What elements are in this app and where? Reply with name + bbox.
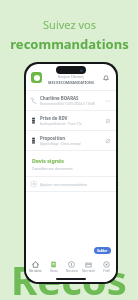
staticText: Suivez vos: [43, 17, 96, 32]
staticText: Ma cabine: [29, 269, 42, 273]
staticText: Appareillage · Devis envoyé: [40, 142, 81, 146]
staticText: Charlène BOARAS: [40, 95, 79, 101]
button[interactable]: Ma caisse: [63, 261, 80, 273]
staticText: Mon stock: [82, 269, 95, 273]
staticText: Bonjour Clément,: [58, 75, 85, 79]
staticText: MES RECOMMANDATIONS: [48, 80, 94, 85]
button[interactable]: Edit: [103, 136, 112, 145]
button[interactable]: Notifications: [100, 72, 111, 83]
button[interactable]: Charlène BOARAS: [26, 91, 116, 110]
staticText: Ajouter une recommandation: [40, 182, 88, 187]
staticText: Ma caisse: [66, 269, 78, 273]
staticText: Profil: [103, 269, 110, 273]
staticText: Devis signés: [32, 157, 64, 164]
staticText: Proposition: [40, 135, 66, 141]
staticText: Recos: [11, 252, 127, 300]
staticText: Recommandé le 12/01/2024 à 11h48: [40, 102, 95, 106]
button[interactable]: Valider: [94, 247, 111, 254]
button[interactable]: Ma cabine: [27, 261, 44, 273]
staticText: Valider: [97, 249, 108, 253]
staticText: Prise de RDV: [40, 115, 68, 121]
button[interactable]: Devis signés: [26, 151, 116, 176]
button[interactable]: Proposition: [26, 131, 116, 150]
button[interactable]: Edit: [103, 116, 112, 125]
button[interactable]: Recos: [45, 261, 62, 273]
button[interactable]: More options: [103, 96, 112, 105]
staticText: Consultez vos documents: [32, 166, 73, 171]
button[interactable]: Ajouter une recommandation: [26, 177, 116, 191]
staticText: recommandations: [10, 35, 129, 53]
staticText: Recos: [50, 269, 58, 273]
staticText: Audioprothésiste · Paris 11e: [40, 122, 82, 126]
button[interactable]: Mon stock: [80, 261, 97, 273]
button[interactable]: Profil: [98, 261, 115, 273]
button[interactable]: Logo: [31, 72, 42, 83]
button[interactable]: Prise de RDV: [26, 111, 116, 130]
